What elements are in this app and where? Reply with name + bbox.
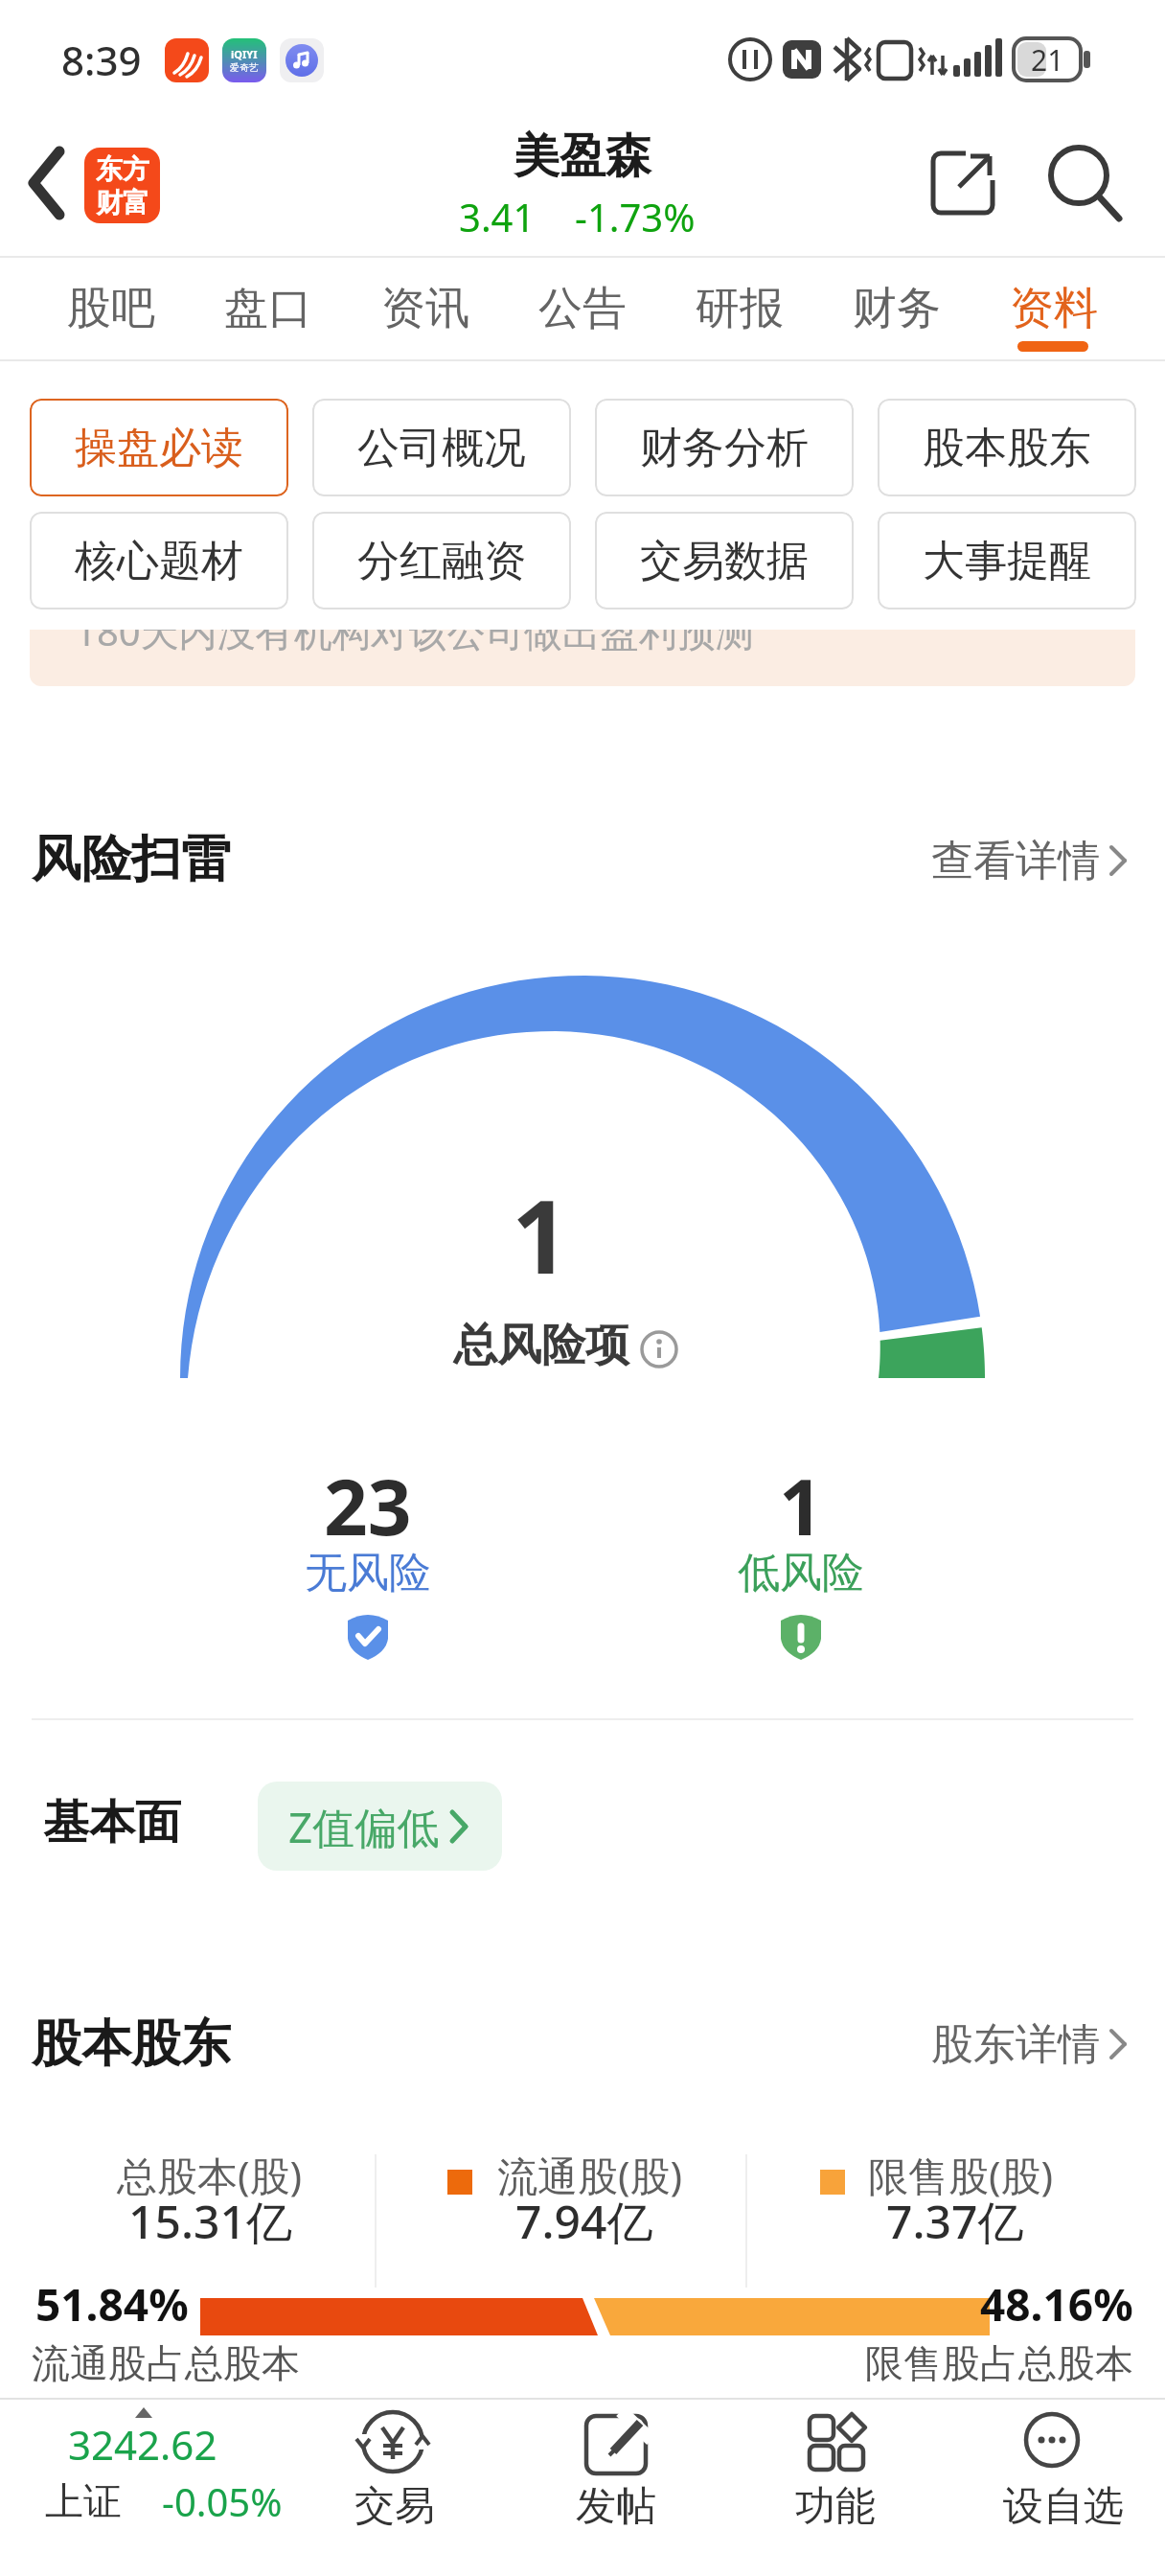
staticText: 设自选 (1003, 2481, 1124, 2532)
button[interactable]: Z值偏低 (258, 1782, 502, 1871)
staticText: 流通股占总股本 (32, 2339, 300, 2387)
staticText: 低风险 (738, 1547, 864, 1599)
button[interactable] (1039, 134, 1135, 230)
button[interactable]: 交易数据 (595, 512, 854, 609)
staticText: 1 (779, 1453, 823, 1557)
staticText: 爱奇艺 (230, 61, 259, 74)
button[interactable]: 财务分析 (595, 399, 854, 496)
staticText: 美盈森 (514, 127, 651, 185)
staticText: 7.94亿 (515, 2190, 653, 2253)
staticText: 查看详情 (931, 835, 1100, 887)
staticText: 公司概况 (357, 422, 526, 474)
staticText: 东方 (96, 152, 149, 186)
staticText: 资讯 (381, 281, 469, 336)
button[interactable]: 大事提醒 (878, 512, 1136, 609)
staticText: 财务分析 (640, 422, 809, 474)
staticText: 无风险 (305, 1547, 431, 1599)
staticText: 股本股东 (923, 422, 1091, 474)
staticText: 股东详情 (931, 2018, 1100, 2071)
staticText: 研报 (696, 281, 784, 336)
staticText: 操盘必读 (75, 422, 243, 474)
button[interactable]: 盘口 (190, 261, 347, 356)
staticText: 财务 (853, 281, 941, 336)
button[interactable]: 操盘必读 (30, 399, 288, 496)
staticText: 23 (324, 1453, 412, 1557)
button[interactable] (915, 2014, 1135, 2074)
staticText: 8:39 (61, 33, 142, 87)
staticText: 股吧 (67, 281, 155, 336)
staticText: 限售股占总股本 (865, 2339, 1133, 2387)
staticText: 3242.62 (68, 2417, 217, 2472)
button[interactable]: 功能 (744, 2399, 926, 2552)
button[interactable]: 资讯 (347, 261, 504, 356)
staticText: 流通股(股) (497, 2148, 683, 2202)
staticText: -1.73% (575, 191, 696, 242)
button[interactable]: 股本股东 (878, 399, 1136, 496)
button[interactable]: 公司概况 (312, 399, 571, 496)
button[interactable]: 研报 (661, 261, 818, 356)
staticText: 总风险项 (453, 1318, 629, 1373)
staticText: 3.41 (459, 191, 536, 242)
staticText: iQIYI (231, 47, 258, 61)
staticText: 48.16% (980, 2274, 1133, 2334)
staticText: 180天内没有机构对该公司做出盈利预测 (75, 630, 754, 657)
button[interactable]: 交易 (304, 2399, 486, 2552)
staticText: Z值偏低 (288, 1798, 440, 1855)
button[interactable]: 180天内没有机构对该公司做出盈利预测 (30, 630, 1135, 686)
button[interactable]: 东方 (84, 148, 160, 223)
staticText: 功能 (795, 2481, 876, 2532)
button[interactable]: 设自选 (972, 2399, 1154, 2552)
button[interactable]: 核心题材 (30, 512, 288, 609)
staticText: 股本股东 (32, 2012, 231, 2076)
staticText: 上证 (45, 2477, 122, 2525)
button[interactable]: 股吧 (33, 261, 190, 356)
staticText: 发帖 (576, 2481, 656, 2532)
staticText: 分红融资 (357, 535, 526, 587)
staticText: 大事提醒 (923, 535, 1091, 587)
button[interactable]: 分红融资 (312, 512, 571, 609)
staticText: 公告 (538, 281, 627, 336)
staticText: 51.84% (35, 2274, 189, 2334)
button[interactable]: 发帖 (525, 2399, 707, 2552)
button[interactable] (915, 830, 1135, 889)
staticText: 交易数据 (640, 535, 809, 587)
staticText: 15.31亿 (128, 2190, 292, 2253)
staticText: 盘口 (224, 281, 312, 336)
staticText: -0.05% (162, 2475, 283, 2527)
staticText: 财富 (96, 186, 149, 219)
staticText: 资料 (1010, 281, 1098, 336)
staticText: 核心题材 (75, 535, 243, 587)
staticText: 限售股(股) (868, 2148, 1054, 2202)
staticText: 基本面 (43, 1794, 181, 1851)
button[interactable]: 资料 (975, 261, 1132, 356)
button[interactable] (920, 140, 1006, 226)
button[interactable]: 公告 (504, 261, 661, 356)
staticText: 7.37亿 (886, 2190, 1024, 2253)
staticText: 风险扫雷 (32, 828, 231, 891)
staticText: 总股本(股) (117, 2148, 303, 2202)
staticText: 1 (512, 1166, 570, 1300)
staticText: 交易 (354, 2481, 435, 2532)
button[interactable] (29, 2401, 297, 2535)
button[interactable]: 财务 (818, 261, 975, 356)
button[interactable] (19, 134, 86, 230)
staticText: 21 (1031, 40, 1064, 80)
